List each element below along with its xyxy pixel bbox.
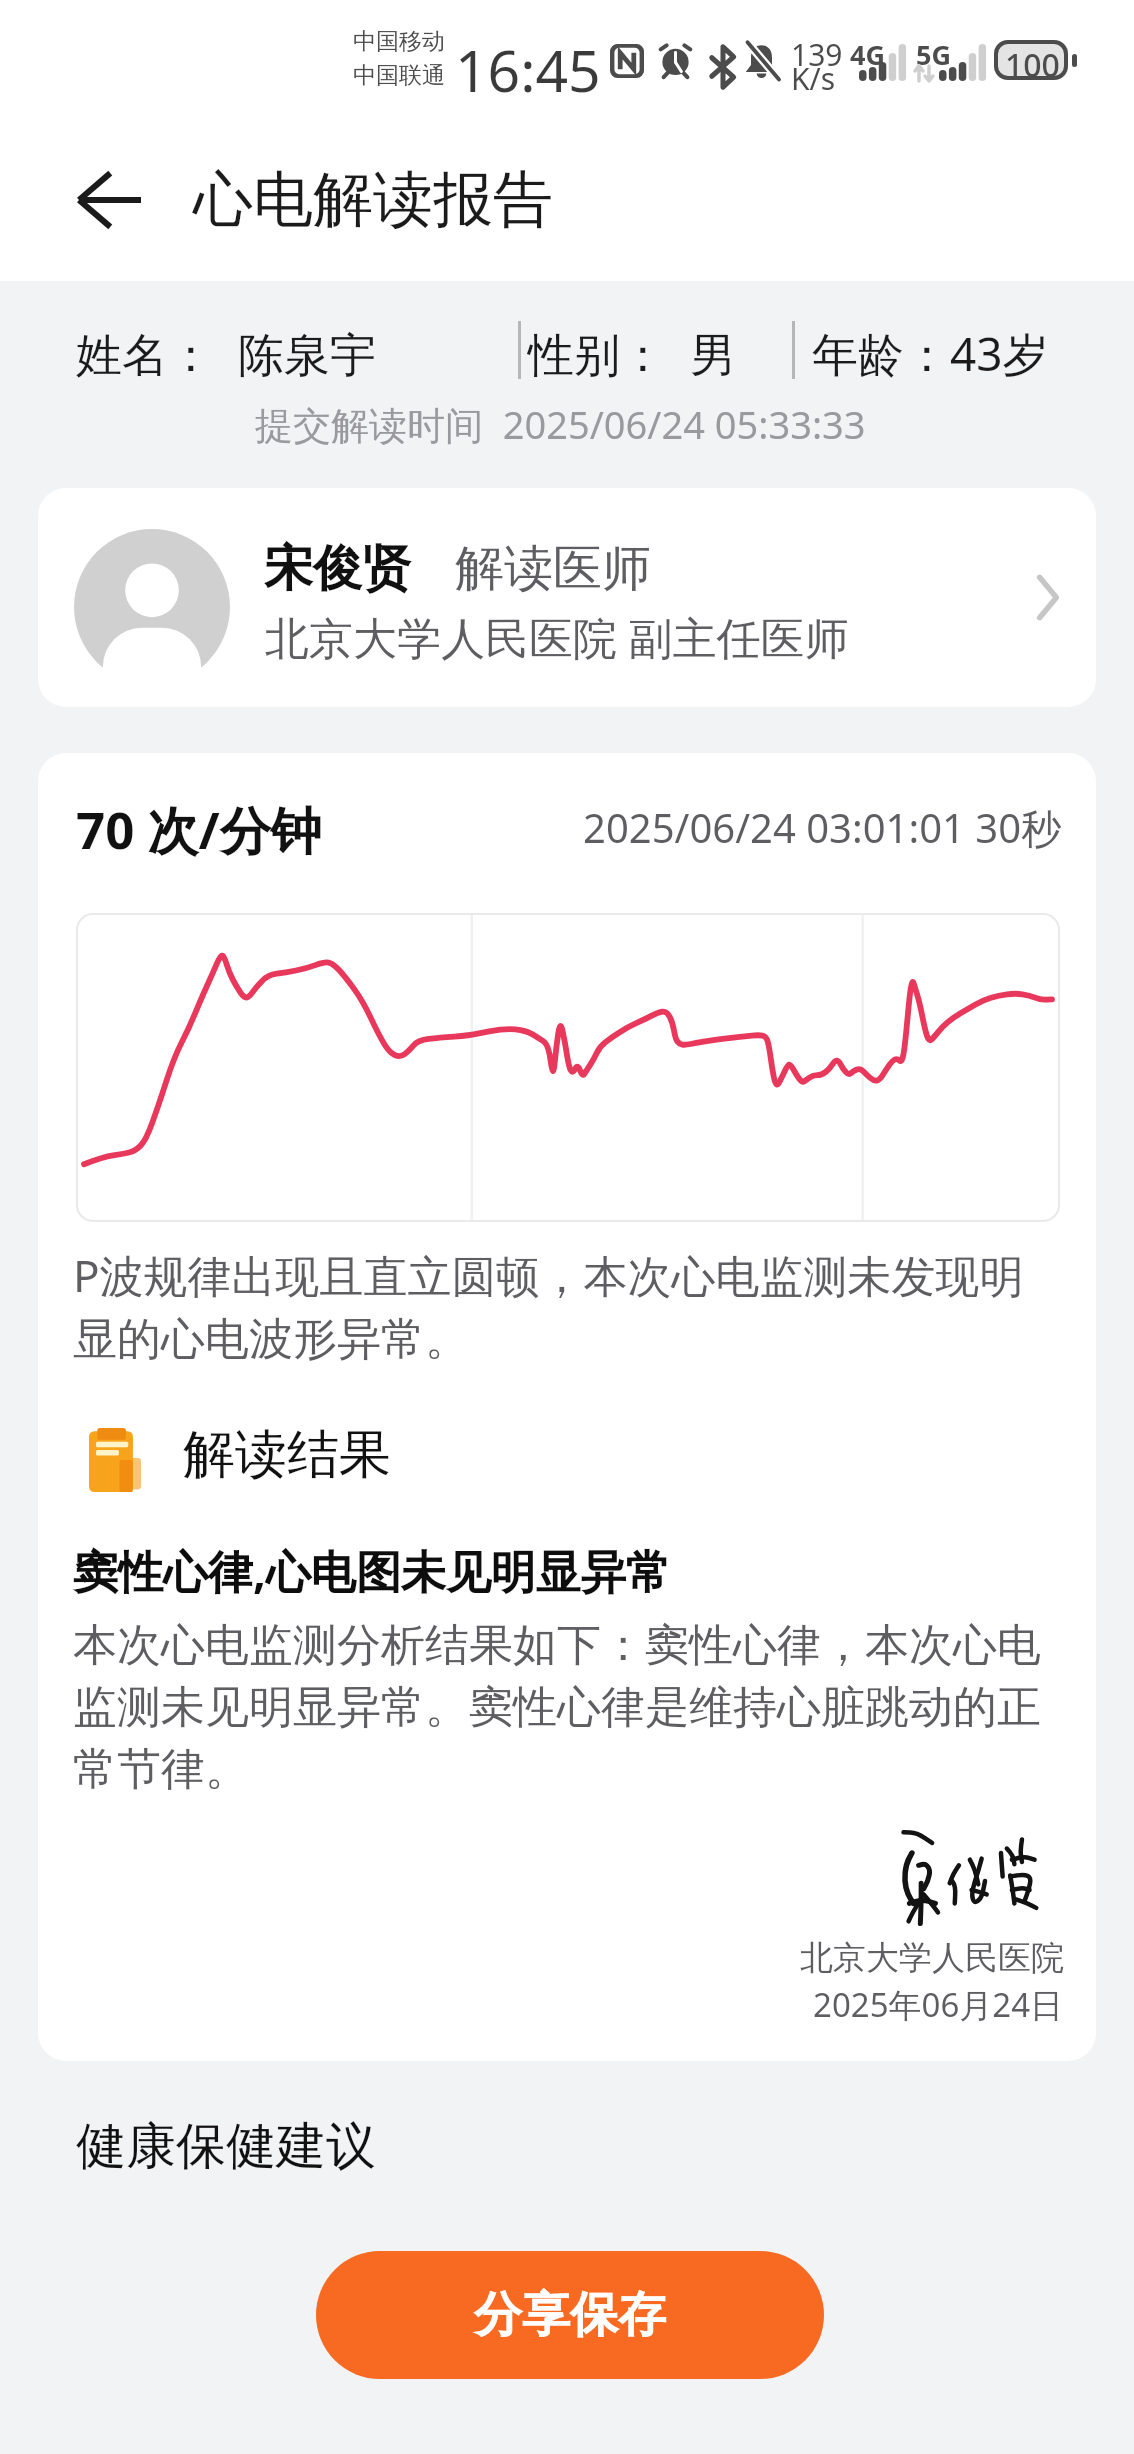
button[interactable]: 宋俊贤	[38, 488, 1096, 707]
staticText: 中国移动 中国联通	[353, 27, 445, 90]
staticText: 解读结果	[183, 1422, 391, 1488]
staticText: 2025年06月24日	[813, 1982, 1064, 2027]
staticText: 5G	[916, 36, 951, 73]
staticText: 宋俊贤	[264, 538, 411, 600]
staticText: 100	[1005, 43, 1060, 85]
staticText: P波规律出现且直立圆顿，本次心电监测未发现明显的心电波形异常。	[73, 1245, 1053, 1367]
staticText: 年龄：43岁	[812, 322, 1049, 385]
staticText: 解读医师	[455, 538, 651, 600]
staticText: 心电解读报告	[193, 162, 553, 238]
staticText: 本次心电监测分析结果如下：窦性心律，本次心电监测未见明显异常。窦性心律是维持心脏…	[73, 1618, 1067, 1797]
staticText: 窦性心律,心电图未见明显异常	[73, 1540, 671, 1601]
staticText: 健康保健建议	[76, 2115, 376, 2178]
staticText: 4G	[850, 36, 885, 73]
staticText: 性别： 男	[528, 322, 736, 385]
staticText: 北京大学人民医院 副主任医师	[265, 607, 849, 667]
staticText: 姓名： 陈泉宇	[76, 322, 376, 385]
staticText: 16:45	[455, 31, 601, 109]
button[interactable]: 分享保存	[316, 2251, 824, 2379]
button[interactable]: Back	[44, 135, 174, 265]
staticText: 分享保存	[474, 2285, 666, 2345]
staticText: 2025/06/24 03:01:01 30秒	[583, 800, 1062, 855]
staticText: 北京大学人民医院	[800, 1937, 1064, 1979]
staticText: 提交解读时间 2025/06/24 05:33:33	[255, 398, 866, 450]
staticText: 70 次/分钟	[76, 794, 322, 864]
staticText: 139 K/s	[791, 34, 843, 99]
